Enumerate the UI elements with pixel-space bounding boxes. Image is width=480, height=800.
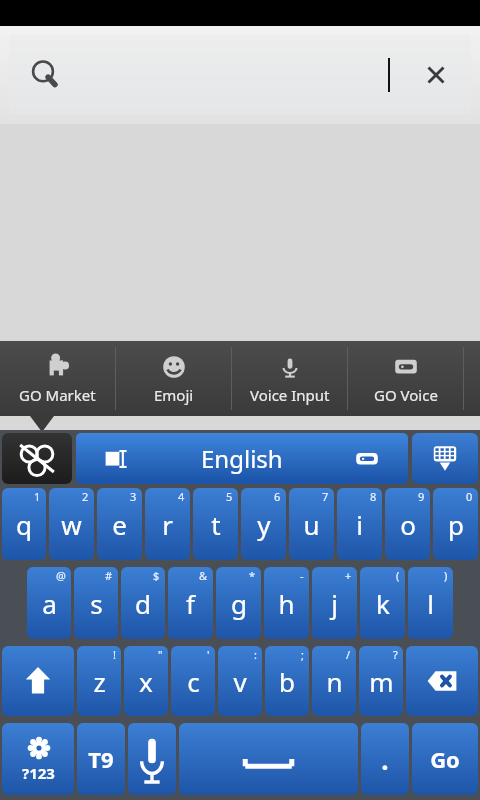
staticText: e [112,507,127,542]
button[interactable]: GO Market [0,341,115,416]
staticText: ) [444,568,448,583]
button[interactable]: y [241,488,286,560]
staticText: @ [56,568,66,583]
staticText: * [249,568,256,583]
staticText: w [61,507,82,542]
staticText: 7 [322,489,329,504]
button[interactable]: Shift [2,646,74,716]
other: Search [31,60,61,90]
staticText: Go [430,744,460,774]
button[interactable]: Theme [326,433,408,484]
staticText: q [16,507,32,542]
button[interactable]: b [265,646,309,716]
button[interactable]: Go [412,723,478,795]
staticText: n [326,664,343,699]
staticText: 9 [418,489,425,504]
button[interactable]: o [385,488,430,560]
staticText: ; [301,647,304,662]
button[interactable]: f [168,567,213,639]
staticText: u [303,507,320,542]
button[interactable]: Clear [419,58,453,92]
button[interactable]: English [158,433,326,484]
button[interactable]: m [359,646,403,716]
staticText: ?123 [22,763,55,783]
button[interactable]: g [216,567,261,639]
button[interactable]: r [145,488,190,560]
button[interactable]: w [49,488,94,560]
button[interactable]: q [2,488,46,560]
staticText: 6 [274,489,281,504]
button[interactable]: e [97,488,142,560]
button[interactable]: Voice [128,723,176,795]
staticText: ? [393,647,398,662]
staticText: a [42,586,57,621]
staticText: k [376,586,390,621]
staticText: v [233,664,247,699]
button[interactable]: d [121,567,165,639]
button[interactable]: GO Voice [348,341,463,416]
button[interactable]: t [193,488,238,560]
staticText: p [448,507,464,542]
staticText: / [346,647,351,662]
button[interactable]: j [312,567,357,639]
staticText: + [345,568,352,583]
staticText: English [201,442,283,475]
staticText: t [211,507,221,542]
button[interactable]: k [360,567,405,639]
staticText: i [356,507,363,542]
staticText: r [162,507,173,542]
button[interactable]: . [361,723,409,795]
staticText: 4 [178,489,185,504]
staticText: T9 [88,744,114,774]
staticText: ( [396,568,400,583]
staticText: c [187,664,200,699]
staticText: o [400,507,416,542]
staticText: 2 [82,489,89,504]
button[interactable]: Emoji [116,341,231,416]
button[interactable]: x [124,646,168,716]
button[interactable]: c [171,646,215,716]
staticText: f [186,586,195,621]
staticText: s [90,586,103,621]
button[interactable]: p [433,488,478,560]
button[interactable]: Voice Input [232,341,347,416]
button[interactable]: h [264,567,309,639]
button[interactable]: a [27,567,71,639]
staticText: h [278,586,295,621]
staticText: " [158,647,163,662]
staticText: x [139,664,153,699]
button[interactable]: Symbols [2,723,74,795]
staticText: y [257,507,271,542]
button[interactable]: v [218,646,262,716]
button[interactable]: n [312,646,356,716]
button[interactable]: Hide keyboard [412,433,478,484]
staticText: # [105,568,113,583]
staticText: $ [153,568,160,583]
staticText: GO Market [19,385,96,405]
staticText: 0 [466,489,473,504]
staticText: Voice Input [250,385,330,405]
staticText: - [300,568,304,583]
staticText: g [231,586,247,621]
staticText: 8 [370,489,377,504]
button[interactable]: i [337,488,382,560]
button[interactable]: u [289,488,334,560]
staticText: z [93,664,106,699]
staticText: & [199,568,208,583]
staticText: 1 [34,489,41,504]
button[interactable]: T9 [77,723,125,795]
staticText: ! [113,647,116,662]
button[interactable]: Space [179,723,358,795]
button[interactable]: z [77,646,121,716]
button[interactable]: l [408,567,453,639]
button[interactable]: Search [9,35,471,115]
staticText: . [381,742,389,777]
button[interactable]: s [74,567,118,639]
staticText: b [279,664,295,699]
staticText: GO Voice [374,385,438,405]
button[interactable]: Switch keyboard [2,433,72,484]
staticText: ' [207,647,210,662]
button[interactable]: Layout [76,433,158,484]
staticText: 5 [226,489,233,504]
button[interactable]: Backspace [406,646,478,716]
